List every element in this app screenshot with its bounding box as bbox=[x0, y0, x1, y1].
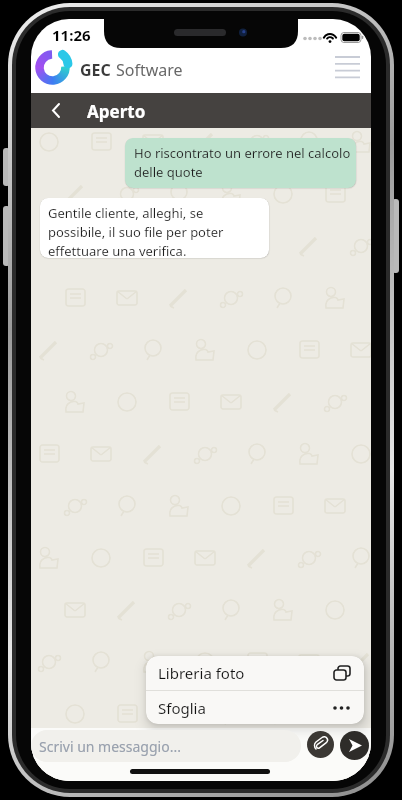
button[interactable] bbox=[329, 51, 367, 85]
staticText: GEC bbox=[80, 59, 111, 81]
staticText: Scrivi un messaggio... bbox=[39, 737, 181, 756]
button[interactable]: Sfoglia bbox=[146, 691, 364, 724]
staticText: Sfoglia bbox=[158, 698, 206, 718]
button[interactable] bbox=[307, 731, 334, 758]
staticText: Ho riscontrato un errore nel calcolo del… bbox=[134, 144, 351, 181]
button[interactable] bbox=[41, 93, 71, 128]
staticText: Gentile cliente, alleghi, se possibile, … bbox=[48, 204, 224, 258]
button[interactable] bbox=[340, 731, 369, 760]
button[interactable]: Scrivi un messaggio... bbox=[31, 730, 301, 762]
staticText: Software bbox=[116, 59, 183, 81]
staticText: Libreria foto bbox=[158, 663, 245, 683]
staticText: 11:26 bbox=[52, 25, 91, 45]
button[interactable]: Libreria foto bbox=[146, 656, 364, 690]
staticText: Aperto bbox=[87, 100, 146, 123]
